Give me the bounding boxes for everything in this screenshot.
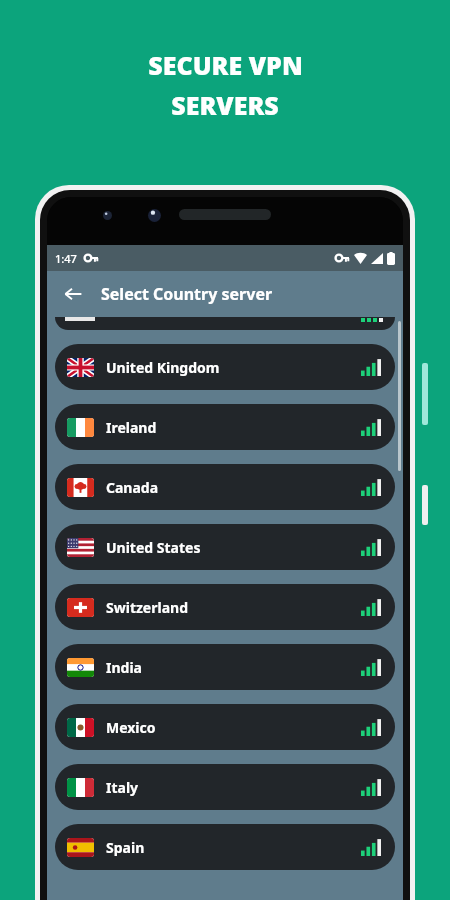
- button[interactable]: India: [55, 644, 395, 690]
- button[interactable]: Switzerland: [55, 584, 395, 630]
- button[interactable]: Back: [53, 274, 93, 314]
- button[interactable]: Spain: [55, 824, 395, 870]
- staticText: Ireland: [106, 418, 157, 437]
- staticText: India: [106, 658, 142, 677]
- staticText: SERVERS: [171, 88, 279, 122]
- staticText: United Kingdom: [106, 358, 220, 377]
- staticText: Select Country server: [101, 283, 273, 305]
- button[interactable]: United States: [55, 524, 395, 570]
- button[interactable]: Canada: [55, 464, 395, 510]
- button[interactable]: Italy: [55, 764, 395, 810]
- staticText: Switzerland: [106, 598, 188, 617]
- staticText: 1:47: [55, 251, 77, 266]
- button[interactable]: Ireland: [55, 404, 395, 450]
- staticText: SECURE VPN: [148, 48, 303, 82]
- staticText: Italy: [106, 778, 139, 797]
- staticText: Mexico: [106, 718, 156, 737]
- button[interactable]: United Kingdom: [55, 344, 395, 390]
- staticText: Spain: [106, 838, 145, 857]
- staticText: Canada: [106, 478, 159, 497]
- button[interactable]: Mexico: [55, 704, 395, 750]
- staticText: United States: [106, 538, 201, 557]
- button[interactable]: [55, 317, 395, 330]
